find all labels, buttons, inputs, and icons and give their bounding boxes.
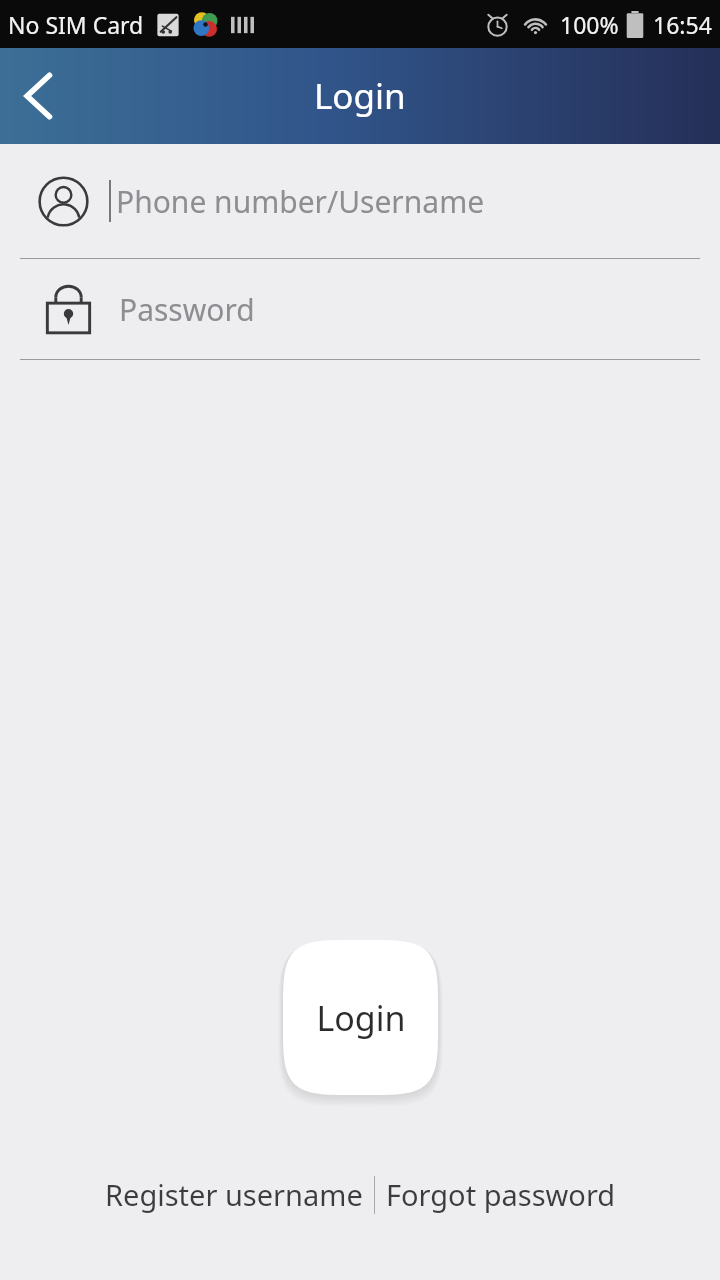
staticText: Password [119, 289, 255, 330]
staticText: Register username [105, 1175, 363, 1214]
button[interactable]: Back [0, 58, 76, 134]
button[interactable]: Password [0, 259, 720, 359]
staticText: No SIM Card [8, 9, 144, 40]
staticText: Login [316, 995, 406, 1041]
staticText: Phone number/Username [116, 181, 485, 222]
button[interactable]: Phone number/Username [0, 144, 720, 258]
staticText: Forgot password [386, 1175, 616, 1214]
button[interactable]: Login [283, 940, 438, 1095]
button[interactable]: Forgot password [375, 1166, 627, 1223]
staticText: 16:54 [653, 9, 712, 40]
staticText: Login [314, 72, 406, 120]
staticText: 100% [560, 9, 619, 40]
button[interactable]: Register username [94, 1166, 374, 1223]
